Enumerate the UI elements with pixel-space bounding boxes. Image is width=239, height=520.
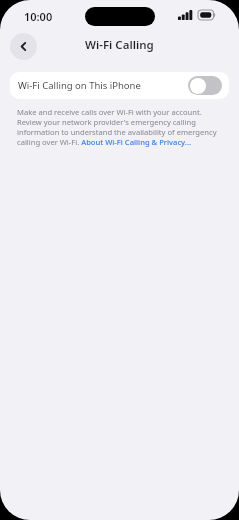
button[interactable]: Back: [10, 33, 37, 60]
staticText: Wi-Fi Calling: [85, 37, 154, 53]
staticText: 10:00: [24, 9, 53, 24]
staticText: Make and receive calls over Wi-Fi with y…: [17, 107, 223, 147]
button[interactable]: Wi-Fi Calling on This iPhone: [10, 72, 229, 99]
staticText: Wi-Fi Calling on This iPhone: [18, 79, 188, 92]
button[interactable]: Wi-Fi Calling on This iPhone toggle: [188, 76, 222, 95]
